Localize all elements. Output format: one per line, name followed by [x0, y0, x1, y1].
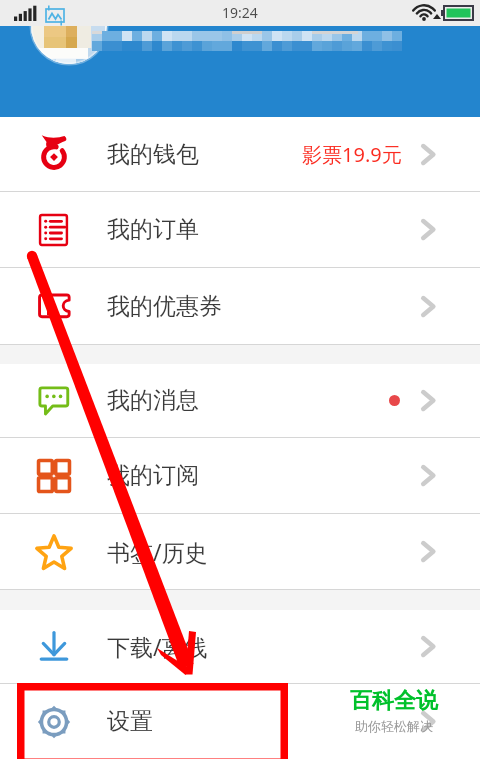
button[interactable]: 下载/离线 [0, 610, 480, 683]
staticText: 我的优惠券 [107, 292, 222, 321]
staticText: 我的订阅 [107, 461, 199, 490]
staticText: 影票19.9元 [302, 141, 402, 168]
staticText: 百科全说 [350, 687, 438, 715]
button[interactable]: 我的消息 [0, 364, 480, 437]
staticText: 我的消息 [107, 386, 199, 415]
staticText: 下载/离线 [107, 631, 208, 662]
button[interactable]: 设置 [0, 684, 480, 759]
staticText: 设置 [107, 707, 153, 736]
staticText: 助你轻松解决 [355, 718, 433, 734]
button[interactable]: 我的优惠券 [0, 268, 480, 344]
staticText: 我的订单 [107, 215, 199, 244]
staticText: 19:24 [222, 3, 258, 22]
button[interactable]: 我的钱包 [0, 117, 480, 191]
button[interactable]: 书签/历史 [0, 514, 480, 589]
button[interactable]: 我的订阅 [0, 438, 480, 513]
staticText: 我的钱包 [107, 140, 199, 169]
staticText: 书签/历史 [107, 536, 208, 567]
button[interactable]: 我的订单 [0, 192, 480, 267]
